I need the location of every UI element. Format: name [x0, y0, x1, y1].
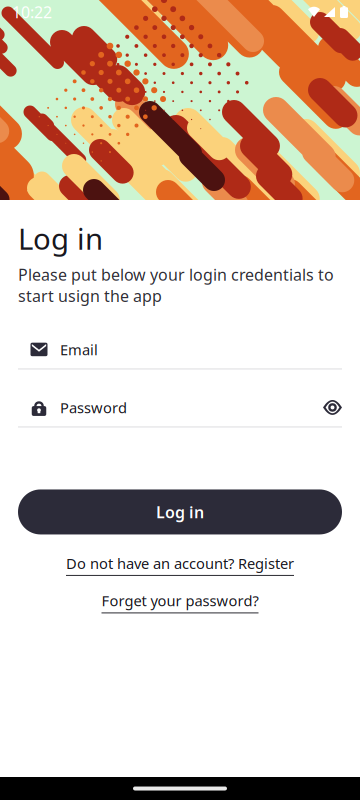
staticText: Log in [18, 219, 103, 258]
button[interactable]: Log in [18, 489, 342, 534]
button[interactable]: Email [18, 338, 342, 360]
staticText: Email [60, 340, 98, 359]
staticText: 10:22 [12, 1, 52, 23]
button[interactable]: Forget your password? [18, 591, 342, 613]
button[interactable]: Do not have an account? Register [18, 553, 342, 576]
staticText: Log in [156, 501, 204, 522]
staticText: Forget your password? [101, 591, 258, 610]
staticText: Do not have an account? Register [66, 553, 294, 573]
button[interactable]: Password [18, 396, 342, 418]
staticText: Password [60, 398, 127, 417]
staticText: Please put below your login credentials … [18, 264, 334, 306]
